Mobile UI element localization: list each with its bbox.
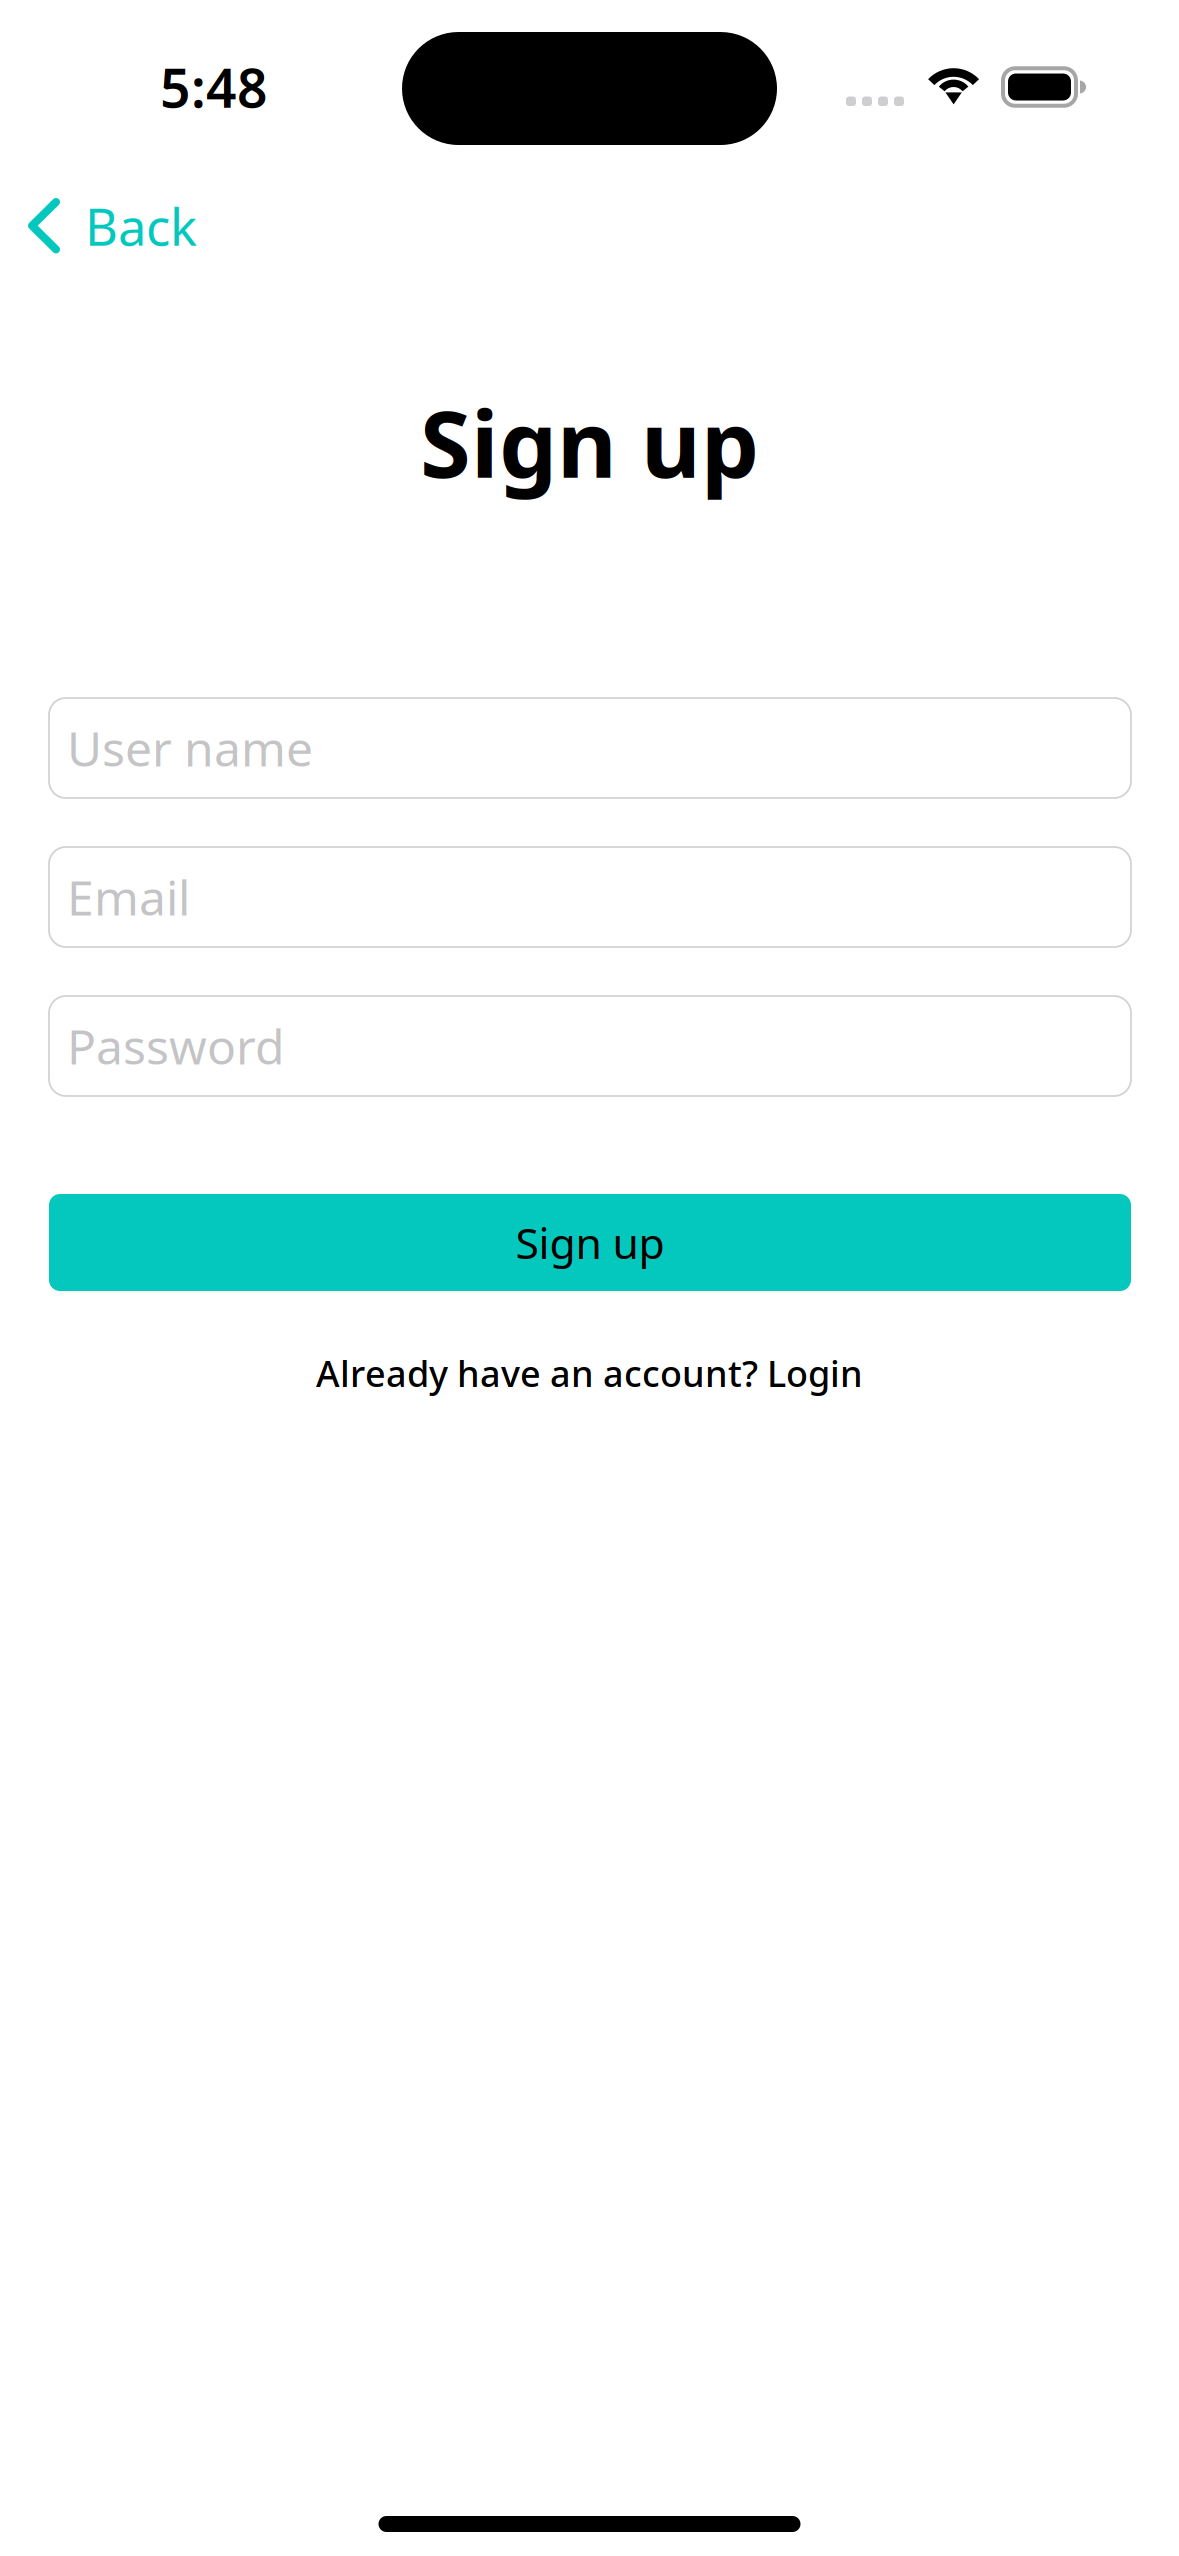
staticText: Password [67,1014,285,1078]
staticText: 5:48 [160,52,268,122]
button[interactable]: Email [49,847,1131,947]
staticText: Sign up [515,1214,664,1271]
button[interactable]: Password [49,996,1131,1096]
staticText: Email [67,865,190,929]
staticText: User name [67,716,313,780]
button[interactable]: Back [0,175,221,277]
button[interactable]: Sign up [49,1194,1131,1291]
staticText: Back [85,192,197,260]
button[interactable]: Already have an account? Login [316,1353,863,1393]
staticText: Sign up [420,381,759,503]
button[interactable]: User name [49,698,1131,798]
staticText: Already have an account? Login [316,1349,863,1397]
